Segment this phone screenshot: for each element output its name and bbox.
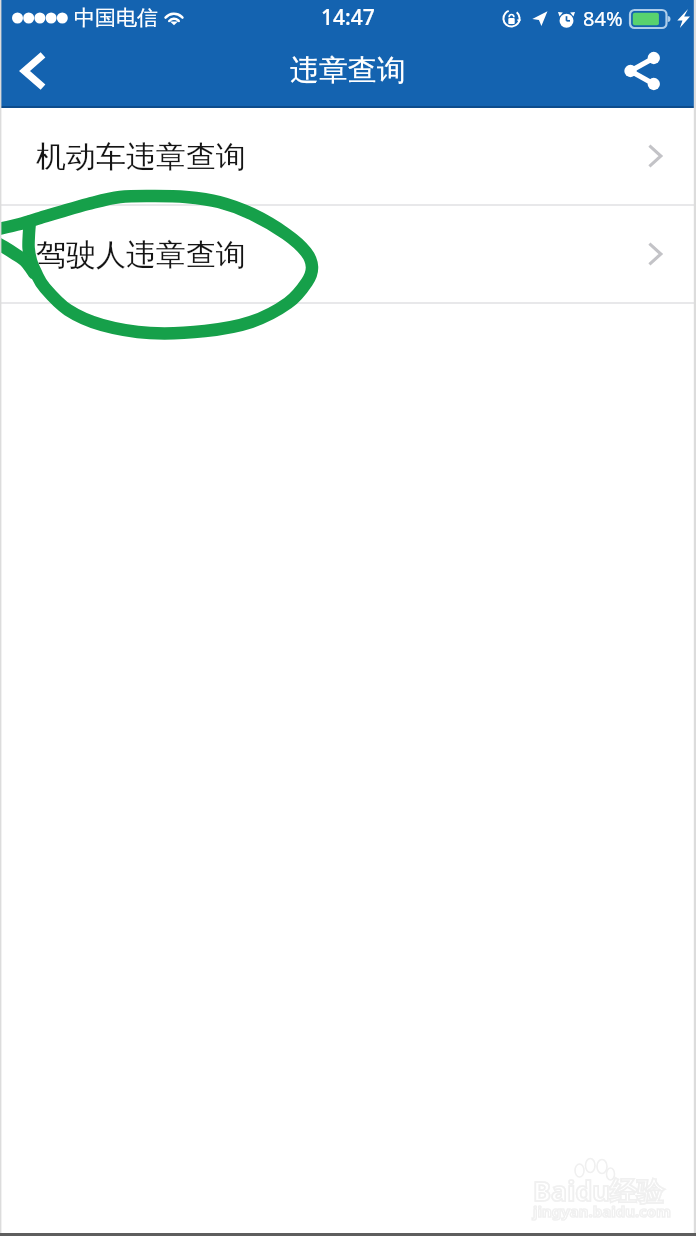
- staticText: jingyan.baidu.com: [533, 1201, 671, 1221]
- staticText: Baidu经验: [533, 1172, 664, 1209]
- staticText: 中国电信: [74, 5, 158, 31]
- staticText: 机动车违章查询: [36, 138, 246, 176]
- button[interactable]: Back: [0, 36, 66, 106]
- staticText: 违章查询: [290, 52, 406, 89]
- staticText: 驾驶人违章查询: [36, 236, 246, 274]
- button[interactable]: 驾驶人违章查询: [0, 206, 696, 302]
- staticText: 14:47: [321, 3, 375, 32]
- staticText: 84%: [583, 5, 623, 32]
- button[interactable]: Share: [590, 36, 696, 106]
- button[interactable]: 机动车违章查询: [0, 108, 696, 204]
